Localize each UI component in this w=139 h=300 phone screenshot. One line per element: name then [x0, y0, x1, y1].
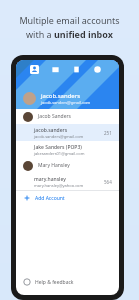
- staticText: Jacob Sanders: [38, 113, 71, 120]
- staticText: mary.hansley: [34, 176, 66, 183]
- staticText: jacob.sanders: [34, 127, 68, 134]
- staticText: Help & feedback: [35, 279, 74, 286]
- button[interactable]: Help & feedback: [16, 275, 119, 289]
- staticText: Multiple email accounts: [19, 14, 120, 26]
- button[interactable]: Jake Sanders (POP3): [16, 141, 119, 158]
- button[interactable]: Mary Hansley: [16, 158, 119, 173]
- staticText: unified inbox: [54, 28, 113, 40]
- staticText: mary.hansley@yahoo.com: [34, 183, 84, 188]
- staticText: with a: [26, 28, 54, 40]
- button[interactable]: Docs: [72, 65, 81, 74]
- button[interactable]: Calendar: [51, 65, 60, 74]
- staticText: jacob.sanders@gmail.com: [34, 134, 84, 139]
- staticText: Add Account: [35, 195, 65, 202]
- staticText: Jake Sanders (POP3): [34, 144, 82, 151]
- staticText: jakesanders01@gmail.com: [34, 151, 85, 156]
- button[interactable]: mary.hansley: [16, 173, 119, 190]
- staticText: 251: [104, 130, 112, 136]
- staticText: jacob.sanders: [41, 92, 81, 100]
- button[interactable]: Add Account: [16, 191, 119, 205]
- staticText: jacob.sanders@gmail.com: [41, 100, 91, 105]
- button[interactable]: jacob.sanders: [16, 124, 119, 141]
- button[interactable]: Jacob Sanders: [16, 109, 119, 124]
- staticText: Mary Hansley: [38, 162, 70, 169]
- button[interactable]: Accounts: [30, 65, 39, 74]
- button[interactable]: Settings: [93, 65, 102, 74]
- staticText: 564: [104, 179, 112, 185]
